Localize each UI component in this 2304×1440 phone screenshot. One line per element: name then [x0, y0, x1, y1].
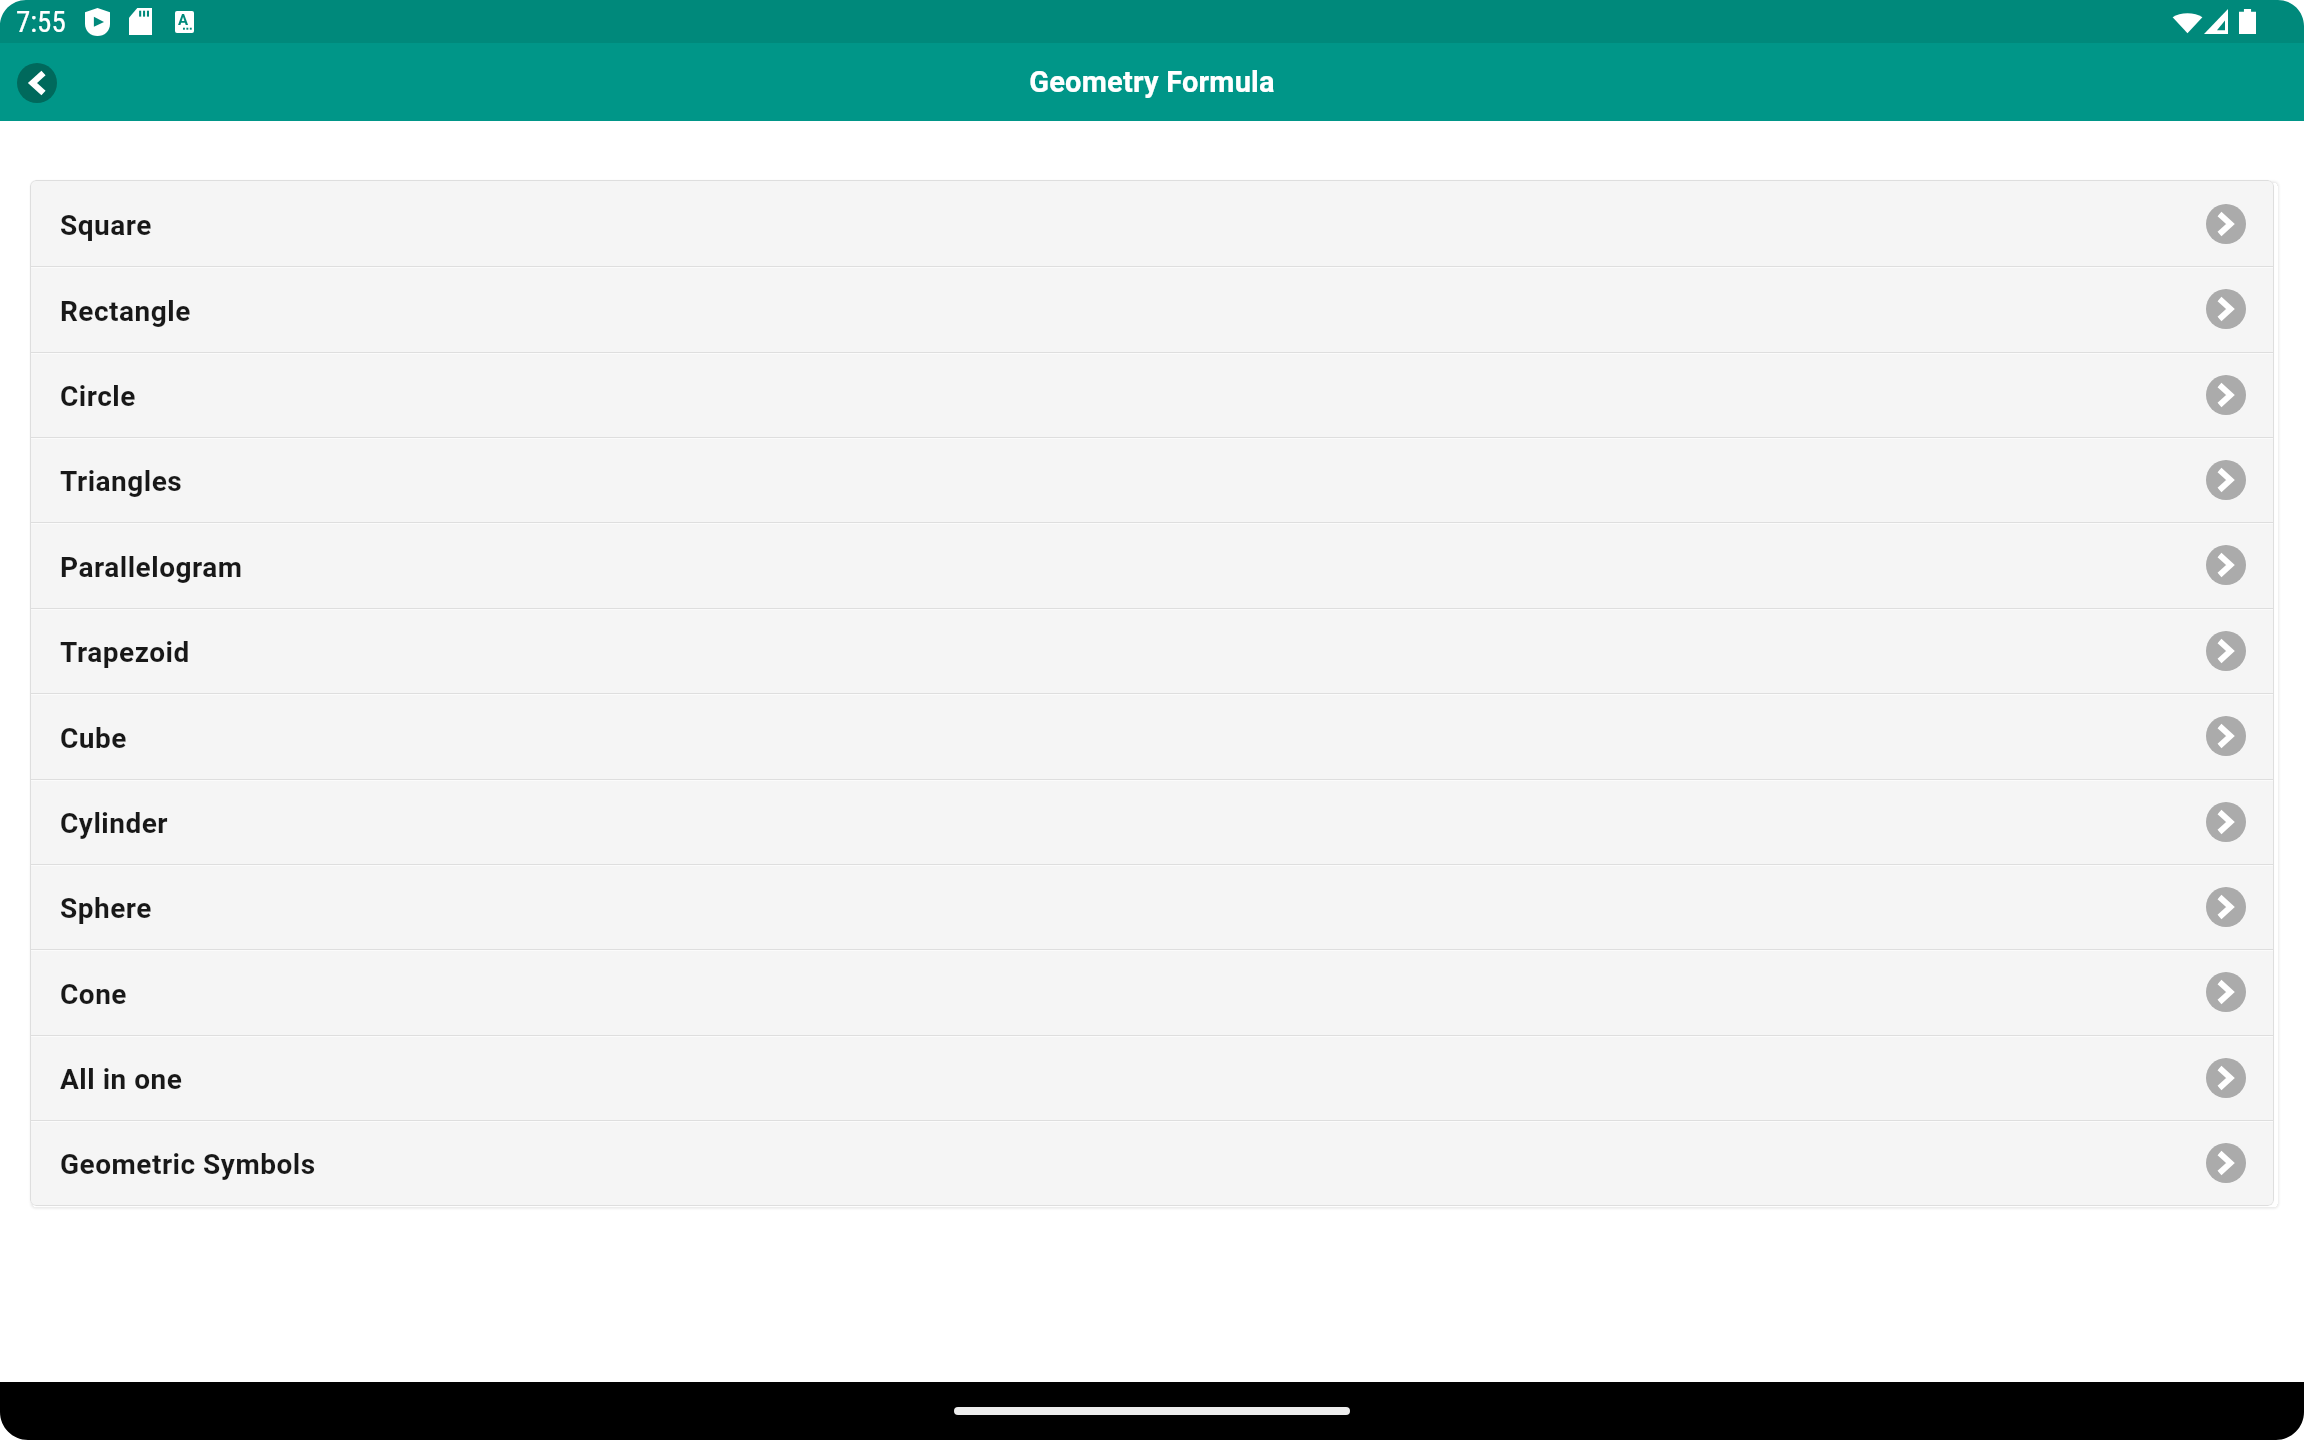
staticText: A — [178, 11, 189, 29]
staticText: Rectangle — [60, 295, 191, 328]
staticText: Geometric Symbols — [60, 1148, 316, 1181]
staticText: Cylinder — [60, 807, 169, 840]
button[interactable]: Cone — [30, 949, 2274, 1035]
staticText: 7:55 — [16, 5, 66, 39]
button[interactable]: Triangles — [30, 437, 2274, 522]
button[interactable]: Back — [17, 63, 57, 103]
staticText: Cone — [60, 978, 127, 1011]
button[interactable]: Circle — [30, 352, 2274, 437]
staticText: Parallelogram — [60, 551, 243, 584]
button[interactable]: All in one — [30, 1035, 2274, 1120]
button[interactable]: Cube — [30, 693, 2274, 779]
staticText: Circle — [60, 380, 136, 413]
button[interactable]: Cylinder — [30, 779, 2274, 864]
button[interactable]: Trapezoid — [30, 608, 2274, 693]
staticText: Trapezoid — [60, 636, 190, 669]
staticText: Cube — [60, 722, 127, 755]
staticText: Sphere — [60, 892, 152, 925]
button[interactable]: Square — [30, 181, 2274, 266]
staticText: Square — [60, 209, 152, 242]
staticText: All in one — [60, 1063, 183, 1096]
button[interactable]: Parallelogram — [30, 522, 2274, 608]
button[interactable]: Sphere — [30, 864, 2274, 949]
staticText: Triangles — [60, 465, 183, 498]
staticText: Geometry Formula — [1029, 65, 1275, 99]
button[interactable]: Rectangle — [30, 266, 2274, 352]
button[interactable]: Geometric Symbols — [30, 1120, 2274, 1205]
